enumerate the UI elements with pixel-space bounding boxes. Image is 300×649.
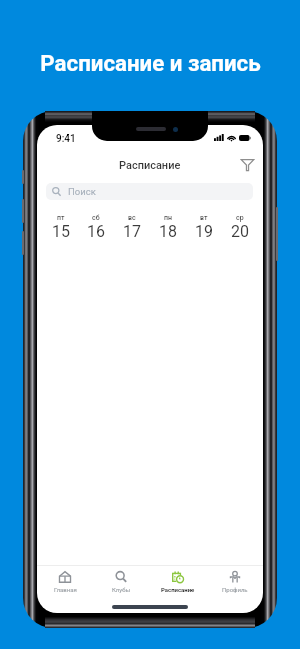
staticText: Расписание [119,159,181,172]
staticText: Клубы [112,586,131,593]
staticText: вс [128,214,136,222]
button[interactable]: Главная [37,566,93,593]
staticText: Расписание [161,586,195,593]
button[interactable]: Поиск [46,183,253,200]
staticText: Профиль [222,586,248,593]
button[interactable]: Расписание [149,566,206,593]
button[interactable]: Filter [236,154,258,176]
button[interactable]: вт [186,215,222,242]
staticText: пт [57,214,65,222]
staticText: Поиск [68,186,96,197]
button[interactable]: пт [43,215,78,242]
staticText: вт [200,214,208,222]
staticText: 9:41 [56,133,76,145]
staticText: Расписание и запись [40,50,261,76]
staticText: 18 [159,222,177,241]
staticText: 17 [123,222,141,241]
button[interactable]: сб [78,215,114,242]
button[interactable]: ср [222,215,258,242]
staticText: 15 [52,222,70,241]
button[interactable]: вс [114,215,150,242]
button[interactable]: Профиль [206,566,263,593]
button[interactable]: пн [150,215,186,242]
staticText: ср [236,214,244,222]
staticText: 20 [231,222,249,241]
staticText: Главная [54,586,77,593]
staticText: 16 [87,222,105,241]
button[interactable]: Клубы [93,566,149,593]
staticText: 19 [195,222,213,241]
staticText: пн [164,214,172,222]
staticText: сб [92,214,100,222]
